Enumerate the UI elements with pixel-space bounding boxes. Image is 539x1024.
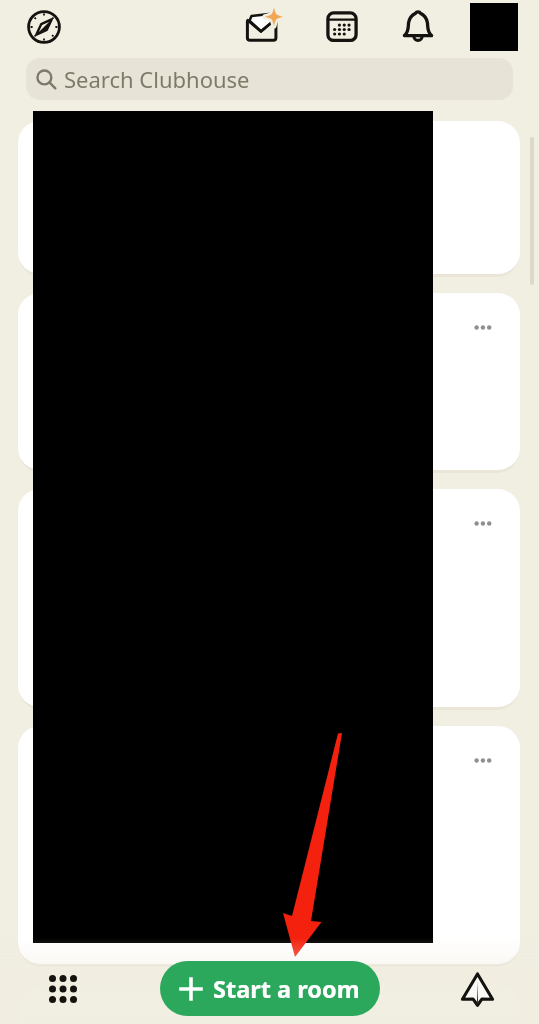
button[interactable]: Upcoming events: [319, 3, 365, 49]
button[interactable]: [18, 726, 520, 964]
button[interactable]: Search Clubhouse: [26, 58, 513, 100]
staticText: Start a room: [213, 973, 360, 1005]
button[interactable]: Notifications: [395, 3, 441, 49]
button[interactable]: Invites: [240, 2, 286, 48]
button[interactable]: Start a room: [160, 961, 380, 1016]
button[interactable]: All rooms: [40, 966, 86, 1012]
staticText: Search Clubhouse: [64, 64, 250, 94]
button[interactable]: [18, 489, 520, 707]
button[interactable]: [18, 121, 520, 274]
button[interactable]: Messages: [454, 966, 500, 1012]
button[interactable]: [18, 293, 520, 470]
button[interactable]: Explore: [22, 5, 66, 49]
